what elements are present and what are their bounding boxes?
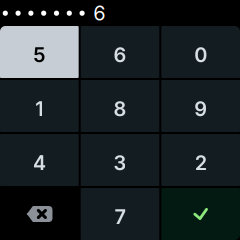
staticText: 2: [195, 151, 207, 175]
button[interactable]: Enter passcode: [161, 188, 240, 240]
staticText: 1: [35, 97, 43, 121]
button[interactable]: 2: [161, 134, 240, 186]
staticText: 4: [33, 151, 46, 175]
button[interactable]: 9: [161, 80, 240, 132]
button[interactable]: Delete: [0, 188, 79, 240]
button[interactable]: 0: [161, 26, 240, 78]
button[interactable]: 6: [81, 26, 159, 78]
staticText: 6: [93, 1, 105, 25]
staticText: 8: [113, 97, 126, 121]
staticText: 9: [194, 97, 207, 121]
button[interactable]: 1: [0, 80, 79, 132]
button[interactable]: 8: [81, 80, 159, 132]
staticText: 3: [113, 151, 126, 175]
button[interactable]: 3: [81, 134, 159, 186]
staticText: 7: [114, 205, 125, 229]
staticText: 6: [113, 43, 126, 67]
button[interactable]: 7: [81, 188, 159, 240]
staticText: 0: [194, 43, 207, 67]
button[interactable]: 5: [0, 26, 79, 78]
staticText: 5: [33, 43, 45, 67]
button[interactable]: 4: [0, 134, 79, 186]
